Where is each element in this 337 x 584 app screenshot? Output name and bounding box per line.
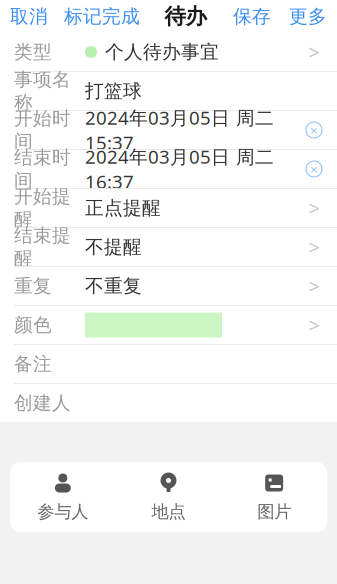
button[interactable]: 开始提醒 — [0, 189, 337, 228]
staticText: 结束时间 — [14, 146, 71, 192]
staticText: × — [310, 160, 318, 178]
button[interactable]: 创建人 — [0, 384, 337, 422]
staticText: > — [308, 312, 319, 338]
staticText: 标记完成 — [64, 5, 140, 28]
staticText: 不重复 — [85, 274, 142, 297]
button[interactable]: 图片 — [221, 462, 327, 532]
staticText: 打篮球 — [85, 79, 142, 102]
staticText: 2024年03月05日 周二 15:37 — [85, 105, 274, 155]
button[interactable]: 重复 — [0, 267, 337, 306]
button[interactable]: 保存 — [225, 0, 279, 36]
staticText: 更多 — [289, 5, 327, 28]
staticText: 取消 — [10, 5, 48, 28]
button[interactable]: 清除开始时间 — [305, 121, 323, 139]
button[interactable]: 参与人 — [10, 462, 116, 532]
button[interactable]: 标记完成 — [58, 0, 146, 36]
button[interactable]: 取消 — [0, 0, 58, 36]
staticText: 地点 — [151, 501, 185, 522]
button[interactable]: 地点 — [116, 462, 221, 532]
staticText: 颜色 — [14, 313, 52, 336]
staticText: × — [310, 121, 318, 139]
staticText: 参与人 — [37, 501, 88, 522]
staticText: > — [308, 273, 319, 299]
staticText: > — [308, 234, 319, 260]
staticText: 待办 — [164, 3, 206, 30]
staticText: 开始提醒 — [14, 185, 71, 231]
staticText: 开始时间 — [14, 107, 71, 153]
staticText: 备注 — [14, 352, 52, 375]
staticText: 结束提醒 — [14, 224, 71, 270]
staticText: 重复 — [14, 274, 52, 297]
staticText: 图片 — [257, 501, 291, 522]
button[interactable]: 结束提醒 — [0, 228, 337, 267]
staticText: 类型 — [14, 40, 52, 63]
staticText: 正点提醒 — [85, 196, 161, 219]
button[interactable]: 备注 — [0, 345, 337, 384]
staticText: > — [308, 39, 319, 65]
staticText: 创建人 — [14, 391, 71, 414]
staticText: 保存 — [233, 5, 271, 28]
staticText: 事项名称 — [14, 68, 71, 114]
staticText: 个人待办事宜 — [105, 40, 219, 63]
staticText: 不提醒 — [85, 235, 142, 258]
staticText: > — [308, 195, 319, 221]
button[interactable]: 更多 — [279, 0, 337, 36]
button[interactable]: 颜色 — [0, 306, 337, 345]
staticText: 2024年03月05日 周二 16:37 — [85, 144, 274, 194]
button[interactable]: 类型 — [0, 33, 337, 72]
button[interactable]: 清除结束时间 — [305, 160, 323, 178]
